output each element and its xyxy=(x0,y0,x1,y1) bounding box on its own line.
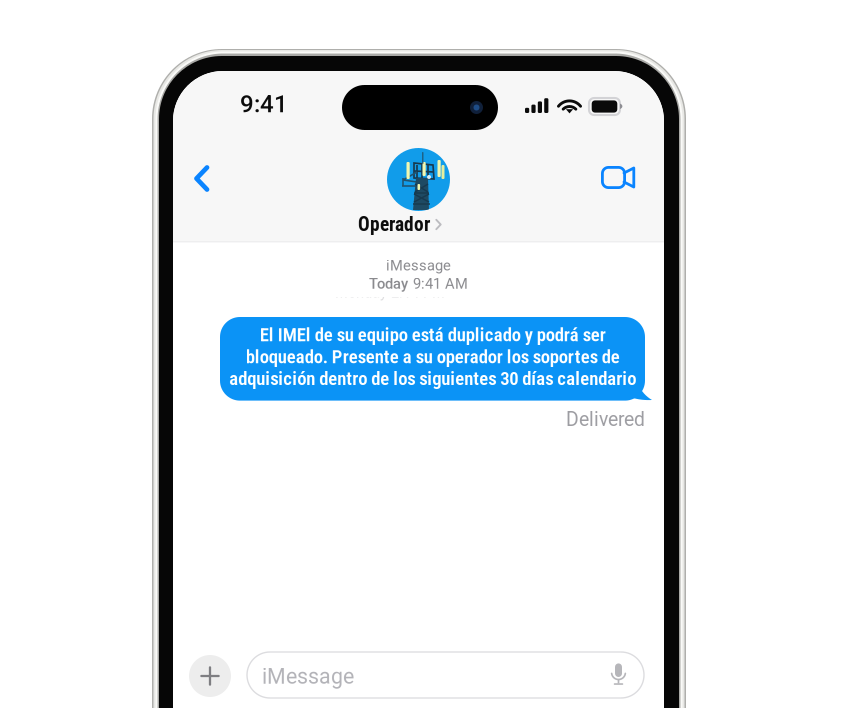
staticText: 9:41 xyxy=(240,90,288,118)
button[interactable]: Back xyxy=(187,156,231,200)
button[interactable]: FaceTime xyxy=(596,156,640,200)
staticText: 9:41 AM xyxy=(413,275,468,292)
staticText: Today xyxy=(369,275,408,292)
button[interactable]: Add attachment xyxy=(189,655,231,697)
staticText: Operador xyxy=(358,213,430,236)
staticText: Monday 2:14 PM xyxy=(335,284,445,301)
button[interactable]: Operador, contact details xyxy=(347,148,487,236)
staticText: El IMEl de su equipo está duplicado y po… xyxy=(229,324,636,390)
staticText: Delivered xyxy=(566,408,645,431)
staticText: iMessage xyxy=(262,664,354,689)
button[interactable]: Message field xyxy=(247,652,644,698)
staticText: iMessage xyxy=(386,257,451,274)
